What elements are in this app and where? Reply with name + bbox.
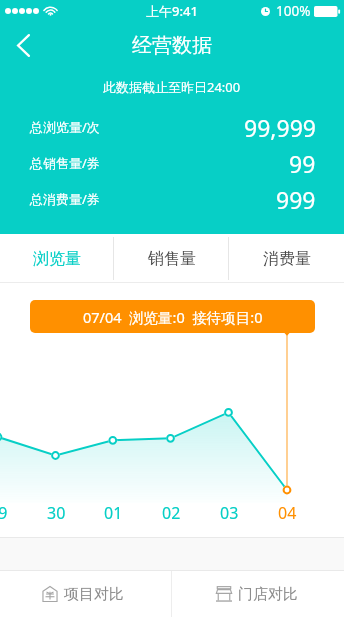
staticText: 99 bbox=[289, 148, 316, 179]
staticText: 浏览量 bbox=[33, 249, 81, 269]
button[interactable]: 浏览量 bbox=[0, 234, 114, 283]
staticText: 01 bbox=[104, 502, 123, 524]
staticText: 总消费量/券 bbox=[30, 190, 100, 208]
staticText: 消费量 bbox=[263, 249, 311, 269]
staticText: 04 bbox=[278, 502, 297, 524]
button[interactable]: 07/04 浏览量:0 接待项目:0 bbox=[30, 300, 315, 333]
button[interactable]: Back bbox=[0, 22, 46, 68]
staticText: 此数据截止至昨日24:00 bbox=[103, 78, 241, 96]
staticText: 29 bbox=[0, 502, 8, 524]
staticText: 总销售量/券 bbox=[30, 154, 100, 172]
staticText: 02 bbox=[162, 502, 181, 524]
staticText: 门店对比 bbox=[238, 585, 298, 604]
staticText: 总浏览量/次 bbox=[30, 118, 100, 136]
staticText: 销售量 bbox=[148, 249, 196, 269]
staticText: 100% bbox=[276, 2, 311, 20]
button[interactable]: 销售量 bbox=[114, 234, 229, 283]
staticText: 03 bbox=[220, 502, 239, 524]
button[interactable]: 消费量 bbox=[229, 234, 344, 283]
staticText: 30 bbox=[47, 502, 66, 524]
staticText: 项目对比 bbox=[64, 585, 124, 604]
staticText: 07/04 浏览量:0 接待项目:0 bbox=[83, 307, 263, 327]
staticText: 经营数据 bbox=[132, 33, 212, 58]
button[interactable]: 项目对比 bbox=[0, 571, 171, 617]
button[interactable]: 门店对比 bbox=[172, 571, 344, 617]
staticText: 999 bbox=[276, 184, 316, 215]
staticText: 上午9:41 bbox=[146, 2, 198, 20]
staticText: 99,999 bbox=[244, 112, 316, 143]
